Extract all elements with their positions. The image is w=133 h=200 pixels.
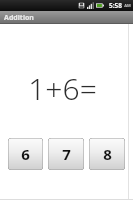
staticText: AM	[124, 3, 131, 8]
staticText: 7	[62, 144, 71, 164]
button[interactable]: 8	[89, 138, 125, 170]
staticText: 1+6=	[28, 68, 97, 109]
button[interactable]: 6	[8, 138, 43, 170]
button[interactable]: 7	[48, 138, 84, 170]
staticText: 8	[103, 144, 112, 164]
staticText: 6	[21, 144, 30, 164]
staticText: 5:58	[109, 1, 122, 10]
staticText: Addition	[4, 13, 34, 23]
